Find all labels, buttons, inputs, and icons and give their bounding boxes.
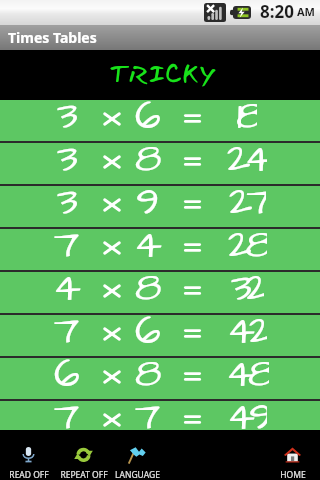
staticText: 7 [54, 315, 80, 344]
staticText: 24 [227, 143, 267, 172]
button[interactable]: REPEAT OFF [57, 430, 110, 480]
staticText: 8 [135, 272, 162, 301]
staticText: 7 [135, 401, 161, 430]
button[interactable]: 3 [0, 100, 320, 141]
staticText: 48 [226, 358, 269, 387]
staticText: 8:20 [260, 0, 294, 23]
button[interactable]: READ OFF [2, 430, 55, 480]
button[interactable]: 7 [0, 401, 320, 442]
staticText: 6 [135, 315, 161, 344]
staticText: 6 [135, 100, 161, 129]
staticText: 3 [57, 186, 78, 215]
staticText: 18 [237, 100, 257, 129]
staticText: LANGUAGE [115, 469, 160, 480]
button[interactable]: 3 [0, 143, 320, 184]
staticText: 27 [229, 186, 266, 215]
staticText: Times Tables [8, 28, 97, 47]
button[interactable]: 6 [0, 358, 320, 399]
staticText: 9 [136, 186, 160, 215]
staticText: READ OFF [9, 469, 49, 480]
staticText: 49 [227, 401, 267, 430]
staticText: 7 [54, 229, 80, 258]
staticText: 3 [57, 143, 78, 172]
staticText: 3 [57, 100, 78, 129]
button[interactable]: HOME [266, 430, 319, 480]
staticText: 6 [54, 358, 80, 387]
staticText: 7 [54, 401, 80, 430]
button[interactable]: 3 [0, 186, 320, 227]
button[interactable]: 4 [0, 272, 320, 313]
staticText: 4 [53, 272, 81, 301]
button[interactable]: LANGUAGE [111, 430, 164, 480]
staticText: REPEAT OFF [60, 469, 108, 480]
staticText: 28 [228, 229, 267, 258]
staticText: 4 [134, 229, 162, 258]
button[interactable]: 7 [0, 315, 320, 356]
staticText: AM [297, 4, 315, 19]
staticText: 8 [135, 143, 162, 172]
staticText: 8 [135, 358, 162, 387]
staticText: TRICKY [109, 55, 216, 93]
staticText: HOME [280, 469, 306, 480]
staticText: 32 [231, 272, 264, 301]
button[interactable]: 7 [0, 229, 320, 270]
staticText: 42 [227, 315, 267, 344]
